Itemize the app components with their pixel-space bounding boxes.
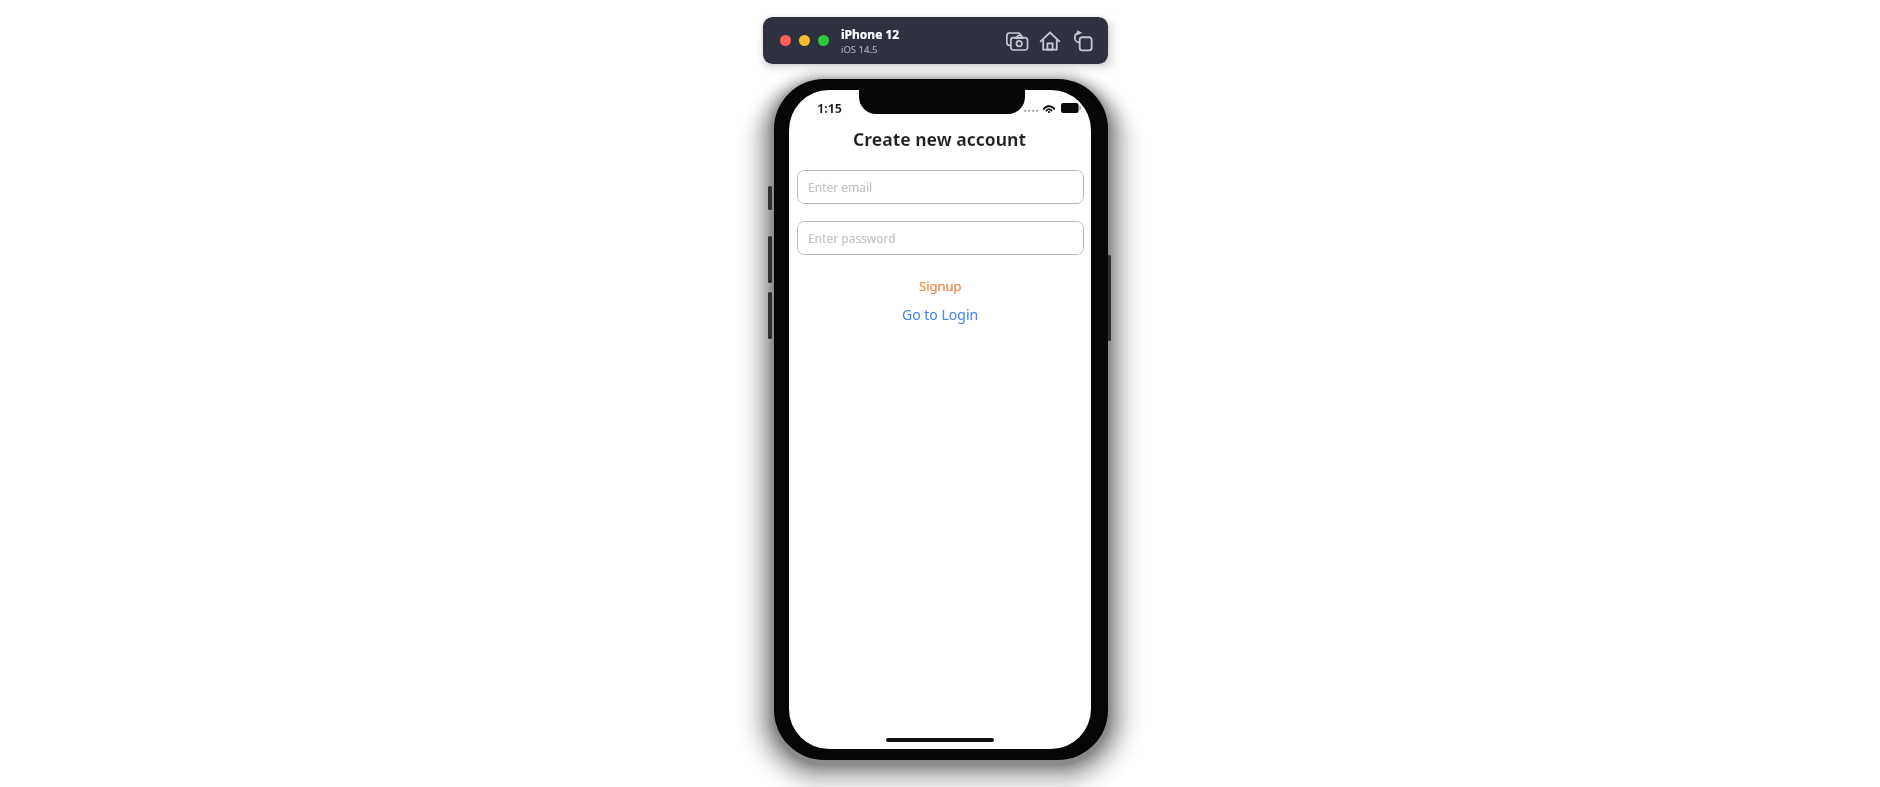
button[interactable]: Home: [1036, 27, 1064, 55]
button[interactable]: Rotate: [1069, 27, 1097, 55]
staticText: iOS 14.5: [841, 43, 878, 56]
button[interactable]: Maximize: [818, 35, 829, 46]
staticText: Enter email: [808, 179, 873, 195]
button[interactable]: Enter email: [797, 170, 1084, 204]
staticText: iPhone 12: [841, 26, 900, 42]
staticText: Enter password: [808, 230, 896, 246]
staticText: Go to Login: [902, 305, 979, 324]
button[interactable]: Screenshot: [1003, 27, 1031, 55]
button[interactable]: Go to Login: [888, 301, 993, 328]
button[interactable]: Enter password: [797, 221, 1084, 255]
staticText: 1:15: [817, 100, 842, 117]
button[interactable]: Signup: [905, 273, 976, 299]
staticText: Signup: [919, 277, 962, 295]
button[interactable]: Minimize: [799, 35, 810, 46]
staticText: Create new account: [853, 127, 1027, 151]
button[interactable]: Close: [780, 35, 791, 46]
